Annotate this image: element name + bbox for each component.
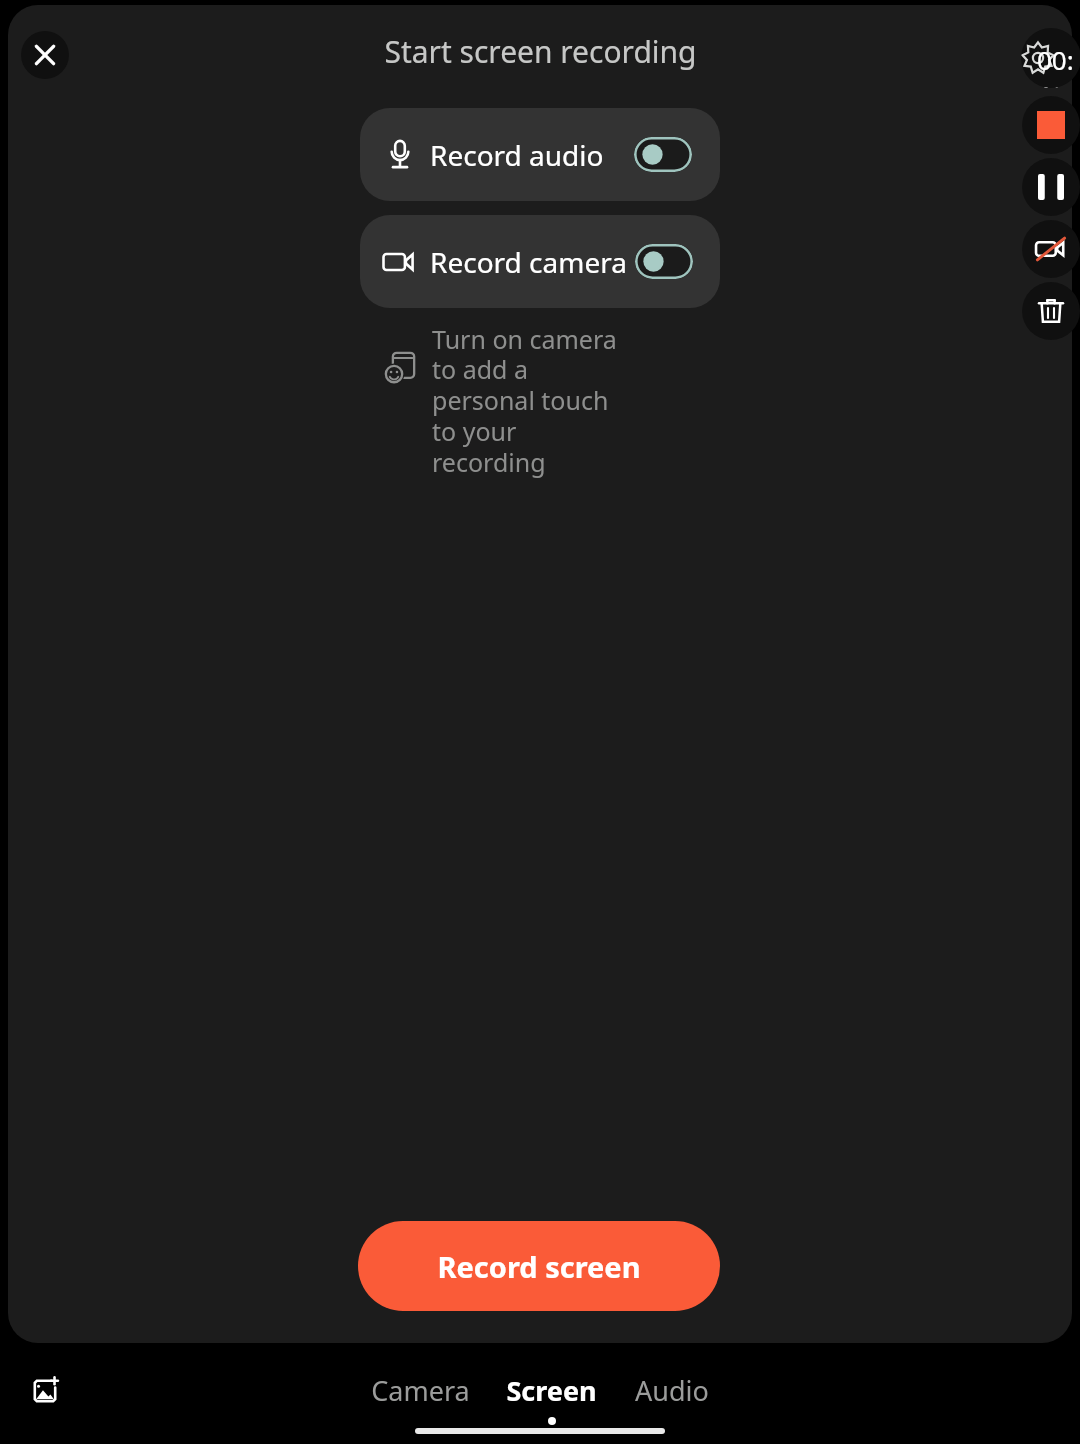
button[interactable]: Recording timer and settings [1021, 28, 1080, 88]
staticText: Screen [506, 1372, 597, 1409]
button[interactable]: Delete recording [1022, 282, 1080, 340]
button[interactable]: Pause recording [1022, 158, 1080, 216]
staticText: 00:00 [1037, 42, 1080, 88]
staticText: Turn on camera to add a personal touch t… [432, 322, 632, 480]
button[interactable]: Stop recording [1022, 96, 1080, 154]
staticText: Camera [371, 1372, 470, 1409]
button[interactable]: Turn off camera [1022, 220, 1080, 278]
button[interactable]: Add from gallery [18, 1364, 72, 1418]
button[interactable]: Close [21, 31, 69, 79]
button[interactable]: Record audio [360, 108, 720, 201]
staticText: Record audio [430, 136, 604, 174]
button[interactable]: Audio [633, 1370, 711, 1427]
button[interactable] [635, 244, 693, 279]
staticText: Record camera [430, 243, 627, 281]
staticText: Record screen [437, 1247, 641, 1286]
button[interactable]: Camera [369, 1370, 472, 1427]
button[interactable]: Record camera [360, 215, 720, 308]
staticText: Audio [635, 1372, 709, 1409]
staticText: Start screen recording [384, 31, 697, 72]
button[interactable]: Screen [504, 1370, 599, 1427]
button[interactable] [634, 137, 692, 172]
button[interactable]: Record screen [358, 1221, 720, 1311]
